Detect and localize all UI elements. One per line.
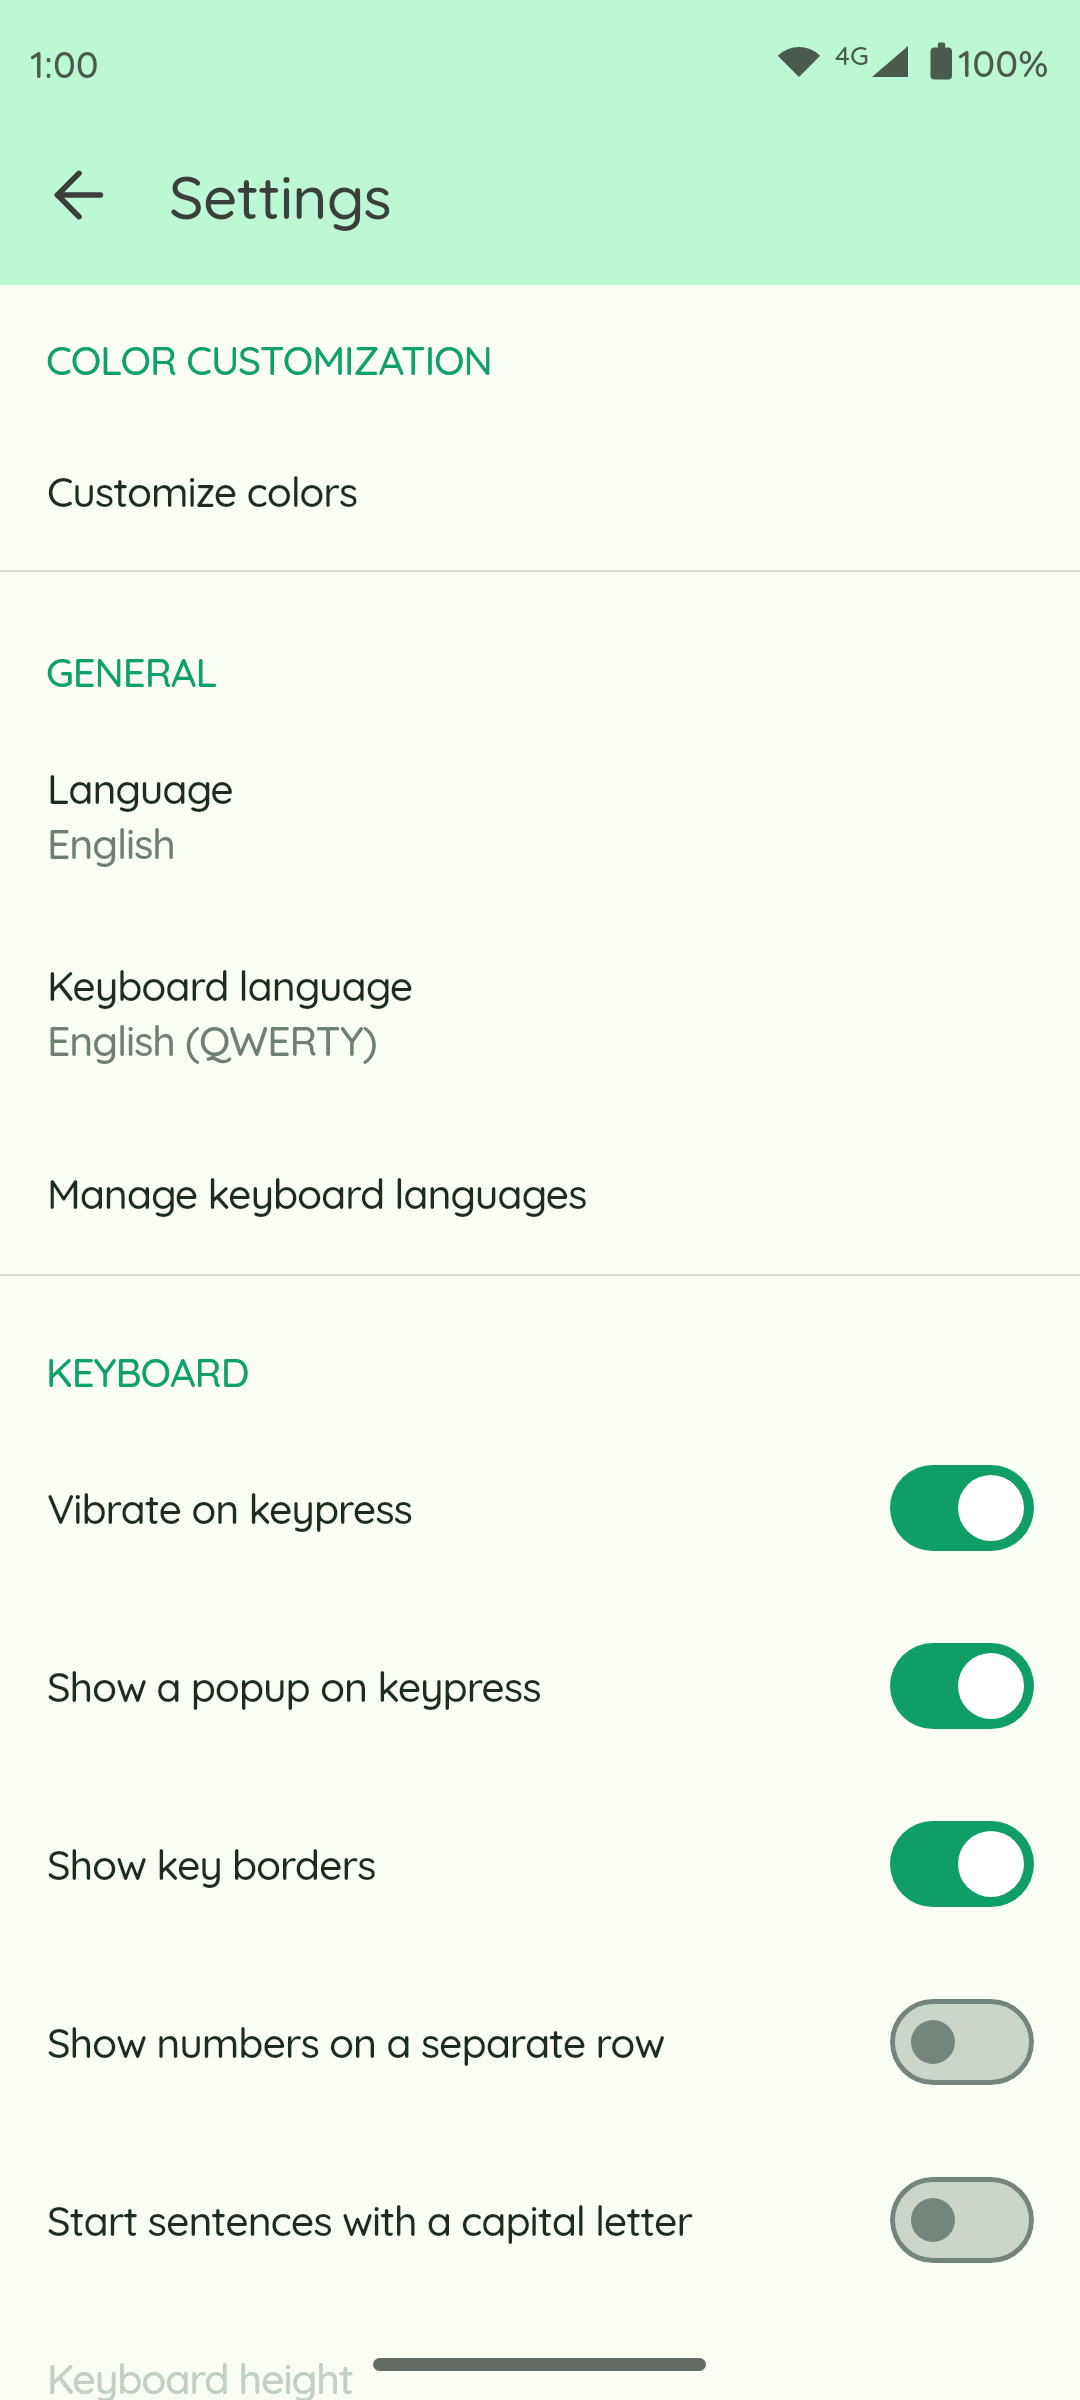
button[interactable]: Show a popup on keypress (0, 1597, 1080, 1775)
staticText: 4G (835, 38, 869, 72)
button[interactable]: Manage keyboard languages (0, 1129, 1080, 1257)
button[interactable]: Vibrate on keypress (0, 1419, 1080, 1597)
staticText: Show numbers on a separate row (47, 2017, 665, 2068)
staticText: Customize colors (47, 466, 358, 517)
staticText: Settings (169, 159, 392, 234)
staticText: Language (47, 763, 233, 814)
staticText: Keyboard language (47, 960, 413, 1011)
button[interactable]: Customize colors (0, 426, 1080, 554)
staticText: COLOR CUSTOMIZATION (46, 335, 492, 385)
staticText: Show a popup on keypress (47, 1661, 541, 1712)
staticText: GENERAL (46, 647, 217, 697)
staticText: 100% (958, 39, 1049, 87)
staticText: Keyboard height (47, 2353, 353, 2400)
staticText: KEYBOARD (46, 1347, 249, 1397)
staticText: Start sentences with a capital letter (47, 2195, 693, 2246)
button[interactable]: Keyboard language (0, 923, 1080, 1095)
button[interactable]: Language (0, 726, 1080, 898)
staticText: Manage keyboard languages (47, 1168, 587, 1219)
button[interactable]: Show key borders (0, 1775, 1080, 1953)
staticText: 1:00 (30, 40, 99, 88)
staticText: English (47, 818, 175, 869)
button[interactable] (42, 170, 118, 220)
button[interactable]: Start sentences with a capital letter (0, 2131, 1080, 2309)
staticText: Vibrate on keypress (47, 1483, 412, 1534)
staticText: Show key borders (47, 1839, 376, 1890)
button[interactable]: Show numbers on a separate row (0, 1953, 1080, 2131)
staticText: English (QWERTY) (47, 1015, 377, 1066)
